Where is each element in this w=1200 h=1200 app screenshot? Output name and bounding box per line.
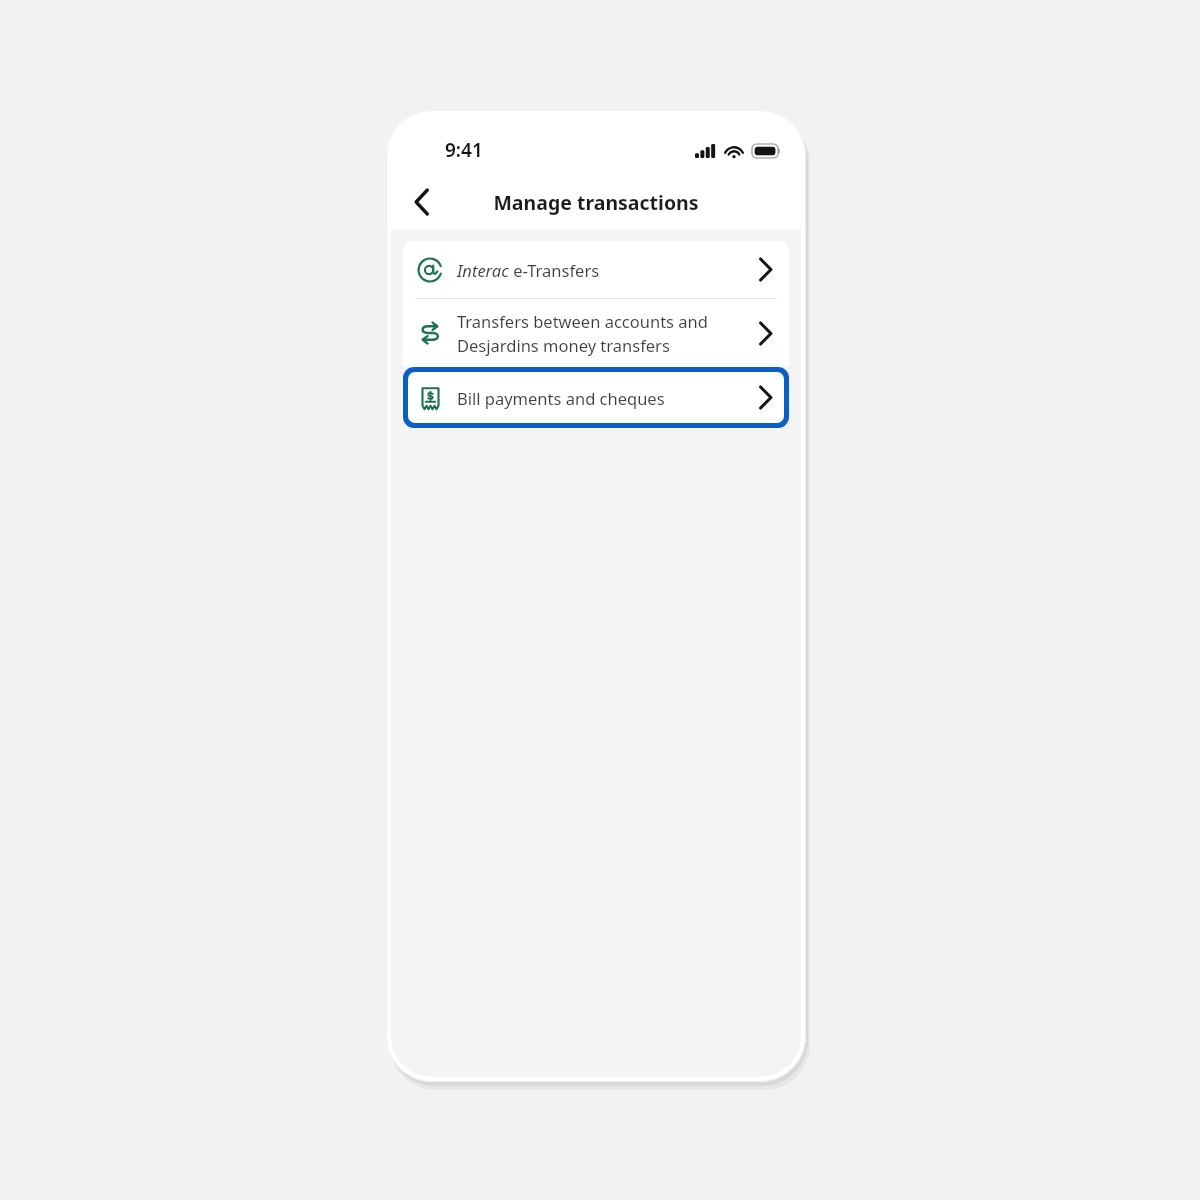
staticText: Interac xyxy=(457,259,509,281)
staticText: Transfers between accounts and xyxy=(457,310,708,332)
staticText: Manage transactions xyxy=(493,189,699,216)
staticText: 9:41 xyxy=(445,137,483,163)
button[interactable]: Transfers between accounts and xyxy=(403,299,789,367)
staticText: Bill payments and cheques xyxy=(457,387,759,409)
staticText: e-Transfers xyxy=(509,259,600,281)
staticText: Desjardins money transfers xyxy=(457,334,670,356)
button[interactable]: Bill payments and cheques xyxy=(403,367,789,428)
button[interactable]: Back xyxy=(399,179,445,225)
button[interactable]: Interac xyxy=(403,241,789,298)
